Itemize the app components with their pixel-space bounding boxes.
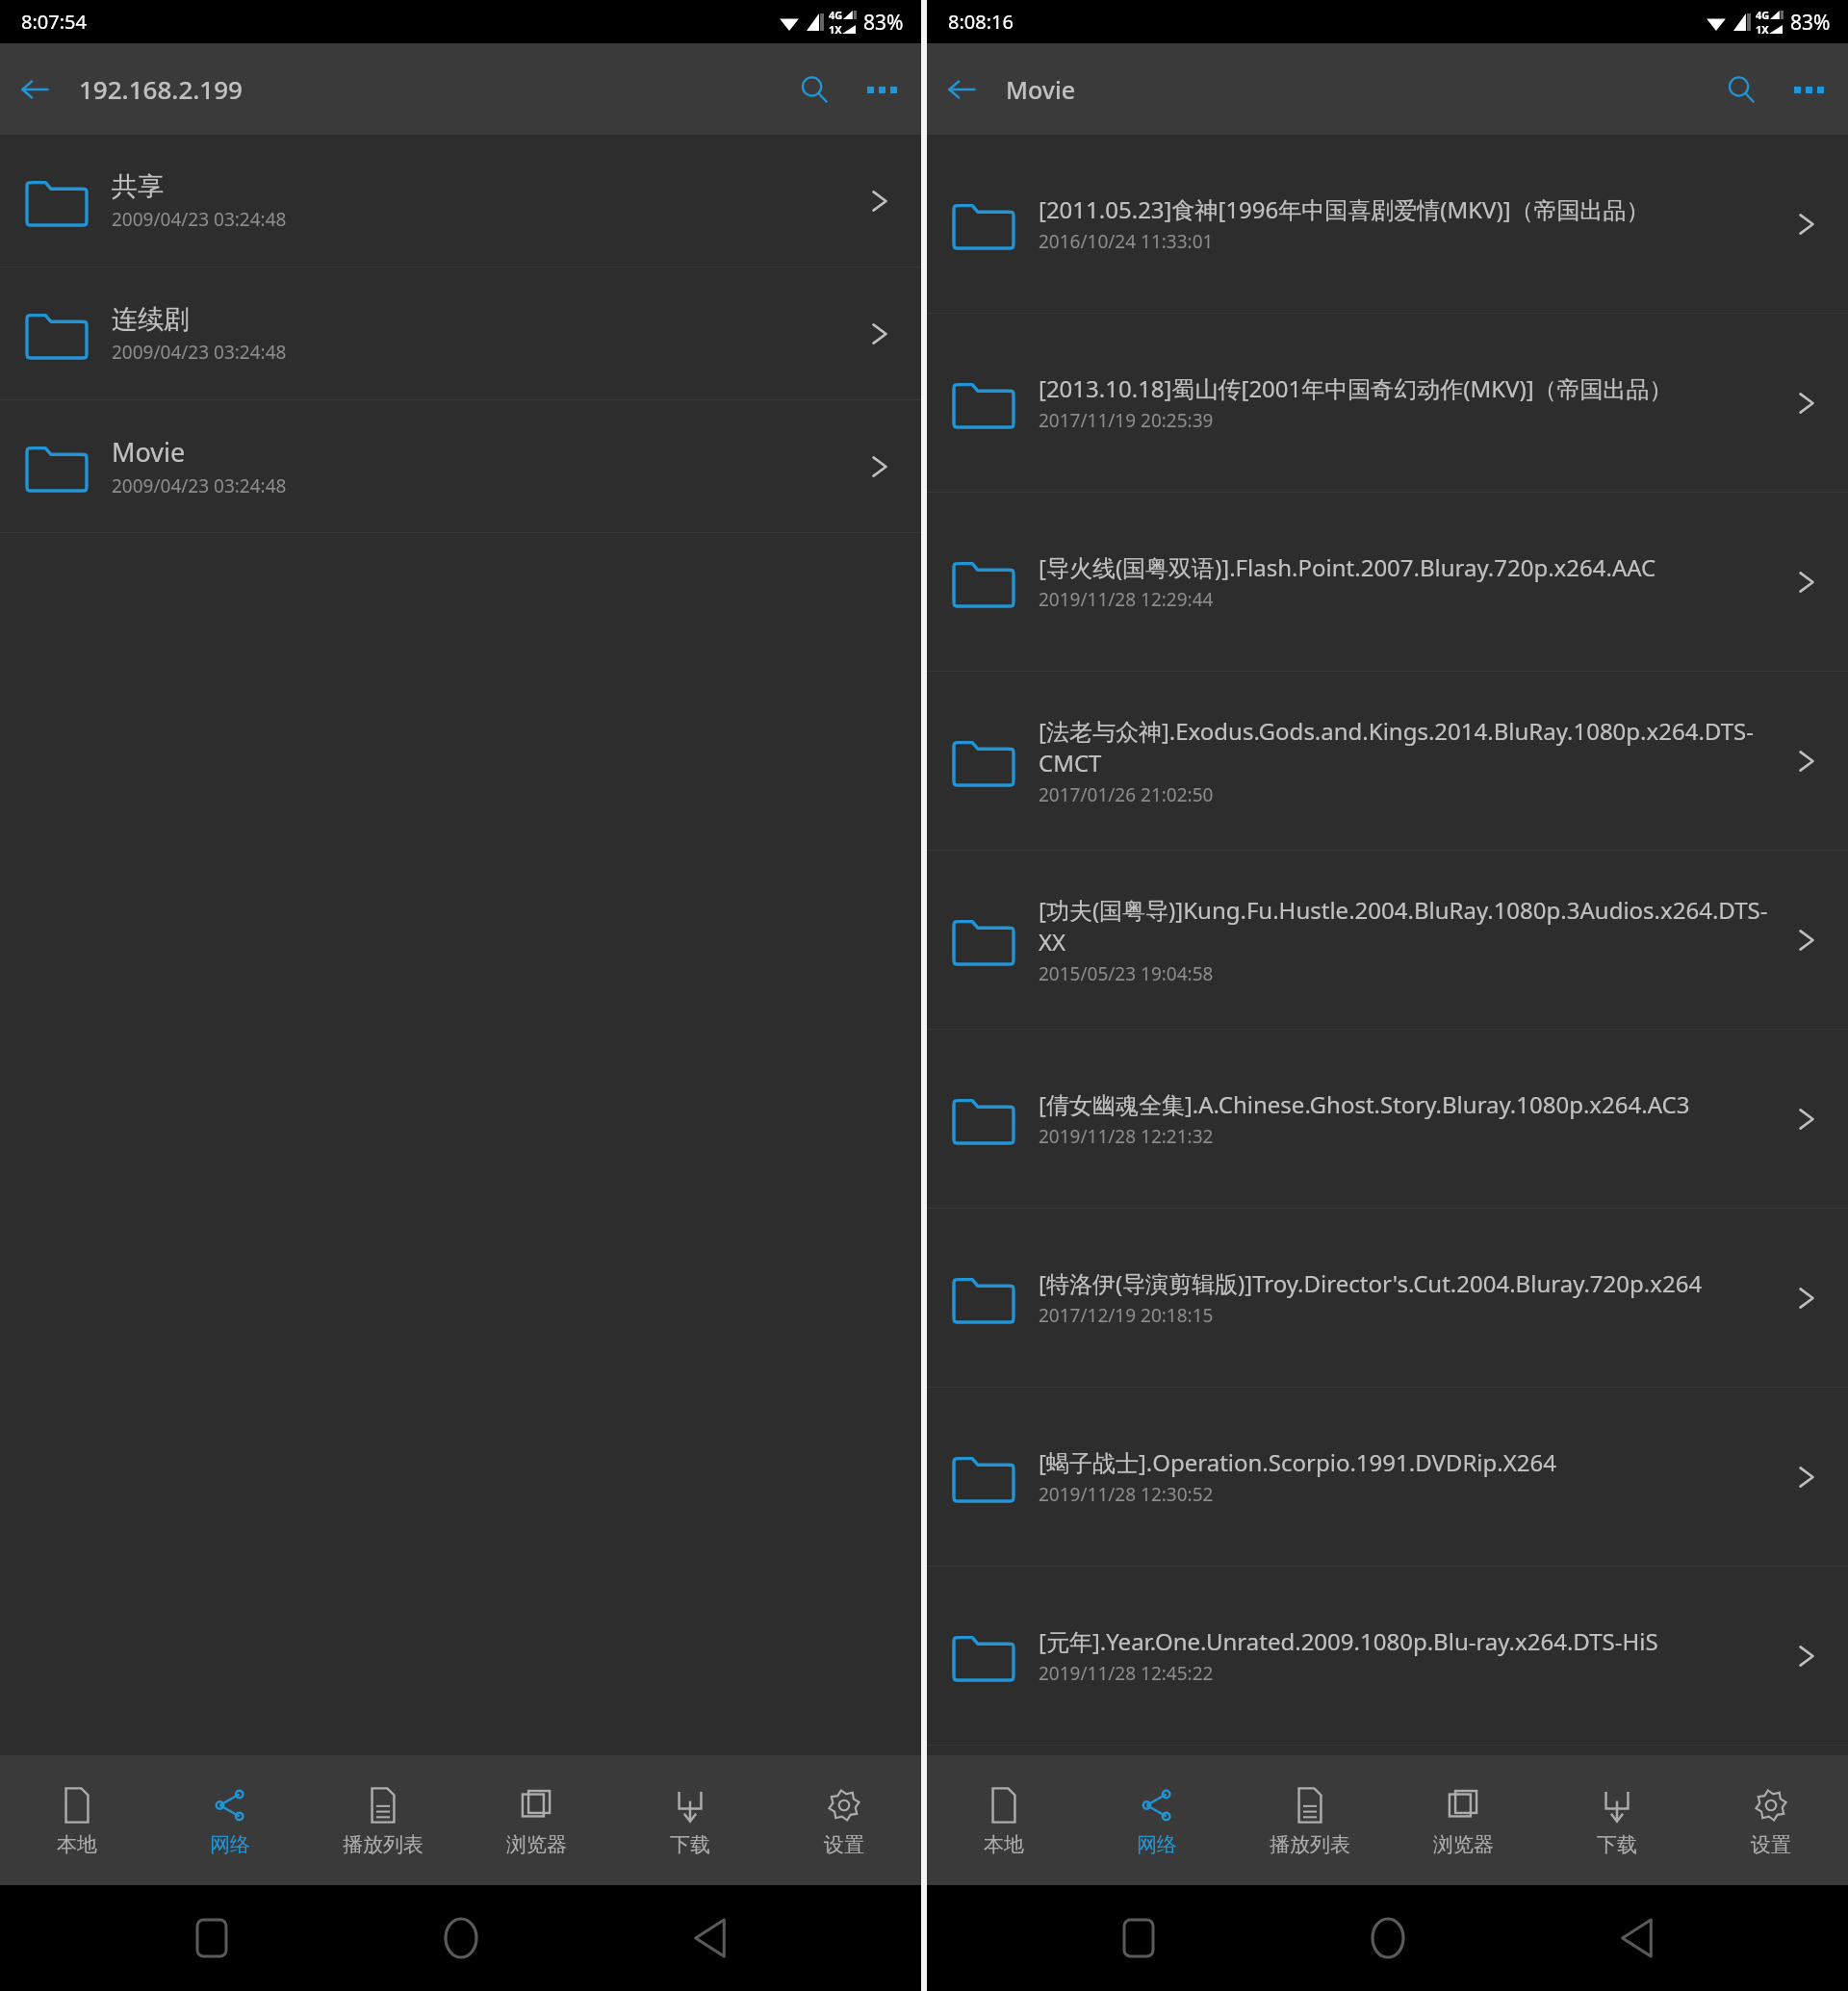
staticText: 共享: [112, 170, 164, 203]
button[interactable]: Recents: [173, 1900, 250, 1977]
staticText: 浏览器: [1433, 1832, 1494, 1857]
staticText: 设置: [824, 1832, 864, 1857]
staticText: [蝎子战士].Operation.Scorpio.1991.DVDRip.X26…: [1039, 1446, 1556, 1478]
staticText: 2017/12/19 20:18:15: [1039, 1303, 1214, 1328]
button[interactable]: [法老与众神].Exodus.Gods.and.Kings.2014.BluRa…: [927, 672, 1848, 850]
staticText: 2019/11/28 12:29:44: [1039, 587, 1214, 612]
staticText: 2009/04/23 03:24:48: [112, 473, 287, 498]
button[interactable]: 共享: [0, 135, 921, 267]
staticText: 83%: [863, 9, 904, 37]
staticText: 2019/11/28 12:30:52: [1039, 1482, 1214, 1507]
staticText: [法老与众神].Exodus.Gods.and.Kings.2014.BluRa…: [1039, 715, 1784, 779]
staticText: 2017/11/19 20:25:39: [1039, 408, 1214, 433]
button[interactable]: Recents: [1100, 1900, 1177, 1977]
button[interactable]: [倩女幽魂全集].A.Chinese.Ghost.Story.Bluray.10…: [927, 1030, 1848, 1208]
staticText: 83%: [1790, 9, 1831, 37]
button[interactable]: 本地: [0, 1755, 153, 1885]
staticText: 播放列表: [1270, 1832, 1350, 1857]
button[interactable]: Home: [423, 1900, 500, 1977]
button[interactable]: Back: [1599, 1900, 1676, 1977]
staticText: 2019/11/28 12:21:32: [1039, 1124, 1214, 1149]
button[interactable]: Home: [1349, 1900, 1426, 1977]
staticText: 下载: [670, 1832, 710, 1857]
button[interactable]: Back: [927, 55, 996, 124]
staticText: 本地: [984, 1832, 1024, 1857]
staticText: [2011.05.23]食神[1996年中国喜剧爱情(MKV)]（帝国出品）: [1039, 193, 1650, 225]
staticText: [功夫(国粤导)]Kung.Fu.Hustle.2004.BluRay.1080…: [1039, 894, 1784, 957]
button[interactable]: [蝎子战士].Operation.Scorpio.1991.DVDRip.X26…: [927, 1388, 1848, 1566]
staticText: 设置: [1751, 1832, 1791, 1857]
staticText: 2009/04/23 03:24:48: [112, 340, 287, 365]
staticText: 2015/05/23 19:04:58: [1039, 961, 1214, 986]
staticText: 网络: [1137, 1832, 1177, 1857]
staticText: 2017/01/26 21:02:50: [1039, 782, 1214, 807]
button[interactable]: Back: [0, 55, 69, 124]
button[interactable]: [特洛伊(导演剪辑版)]Troy.Director's.Cut.2004.Blu…: [927, 1209, 1848, 1387]
button[interactable]: 播放列表: [306, 1755, 459, 1885]
button[interactable]: 浏览器: [1386, 1755, 1540, 1885]
button[interactable]: 设置: [767, 1755, 921, 1885]
button[interactable]: 连续剧: [0, 268, 921, 399]
staticText: 4G: [829, 8, 843, 22]
button[interactable]: Search: [781, 56, 848, 123]
staticText: 8:08:16: [948, 9, 1014, 35]
staticText: 2019/11/28 12:45:22: [1039, 1661, 1214, 1686]
staticText: [倩女幽魂全集].A.Chinese.Ghost.Story.Bluray.10…: [1039, 1088, 1690, 1120]
button[interactable]: [导火线(国粤双语)].Flash.Point.2007.Bluray.720p…: [927, 493, 1848, 671]
button[interactable]: 本地: [927, 1755, 1080, 1885]
staticText: 网络: [210, 1832, 250, 1857]
button[interactable]: [功夫(国粤导)]Kung.Fu.Hustle.2004.BluRay.1080…: [927, 851, 1848, 1029]
staticText: 8:07:54: [21, 9, 87, 35]
staticText: 1X: [1756, 22, 1769, 37]
button[interactable]: Movie: [0, 400, 921, 532]
staticText: 浏览器: [506, 1832, 567, 1857]
staticText: 2009/04/23 03:24:48: [112, 207, 287, 232]
button[interactable]: 浏览器: [459, 1755, 613, 1885]
button[interactable]: [元年].Year.One.Unrated.2009.1080p.Blu-ray…: [927, 1567, 1848, 1745]
button[interactable]: 网络: [153, 1755, 306, 1885]
button[interactable]: 下载: [613, 1755, 767, 1885]
staticText: [元年].Year.One.Unrated.2009.1080p.Blu-ray…: [1039, 1625, 1658, 1657]
staticText: Movie: [1006, 73, 1707, 106]
button[interactable]: 网络: [1080, 1755, 1233, 1885]
staticText: [特洛伊(导演剪辑版)]Troy.Director's.Cut.2004.Blu…: [1039, 1267, 1703, 1299]
staticText: 4G: [1756, 8, 1770, 22]
button[interactable]: [2013.10.18]蜀山传[2001年中国奇幻动作(MKV)]（帝国出品）: [927, 314, 1848, 492]
staticText: 播放列表: [343, 1832, 423, 1857]
button[interactable]: 下载: [1540, 1755, 1694, 1885]
button[interactable]: 设置: [1694, 1755, 1848, 1885]
staticText: 下载: [1597, 1832, 1637, 1857]
staticText: 192.168.2.199: [79, 72, 781, 106]
staticText: Movie: [112, 434, 186, 470]
button[interactable]: More options: [1775, 56, 1842, 123]
button[interactable]: 播放列表: [1233, 1755, 1386, 1885]
staticText: 连续剧: [112, 303, 190, 336]
button[interactable]: Search: [1707, 56, 1775, 123]
staticText: [导火线(国粤双语)].Flash.Point.2007.Bluray.720p…: [1039, 551, 1656, 583]
staticText: [2013.10.18]蜀山传[2001年中国奇幻动作(MKV)]（帝国出品）: [1039, 372, 1673, 404]
button[interactable]: [2011.05.23]食神[1996年中国喜剧爱情(MKV)]（帝国出品）: [927, 135, 1848, 313]
staticText: 1X: [829, 22, 842, 37]
staticText: 2016/10/24 11:33:01: [1039, 229, 1214, 254]
button[interactable]: More options: [848, 56, 915, 123]
staticText: 本地: [57, 1832, 97, 1857]
button[interactable]: Back: [672, 1900, 749, 1977]
